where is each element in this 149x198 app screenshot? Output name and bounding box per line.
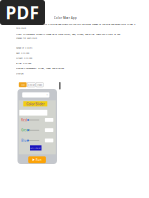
staticText: Green: 0 to 255	[16, 56, 32, 60]
staticText: Run	[36, 158, 42, 162]
staticText: Note: In computer screen is made up of t…	[16, 32, 120, 36]
button[interactable]: Design	[27, 82, 35, 87]
staticText: Design Components: Slider, Label and But…	[16, 66, 64, 70]
staticText: Color Mixer App	[54, 16, 77, 20]
staticText: nice color.	[16, 26, 27, 29]
staticText: Red	[21, 118, 27, 122]
staticText: ⌄	[46, 93, 48, 96]
staticText: Color Slider	[26, 101, 44, 106]
staticText: PDF	[5, 1, 39, 24]
button[interactable]: Run	[28, 156, 46, 163]
button[interactable]: Mix Colors	[30, 145, 41, 150]
staticText: shades for each color.	[16, 36, 38, 40]
staticText: Design	[28, 83, 35, 86]
button[interactable]: Index	[36, 82, 43, 87]
staticText: Green	[21, 128, 30, 132]
staticText: Red: 0 to 255	[16, 51, 29, 54]
staticText: Mix Colors	[30, 146, 41, 149]
staticText: Design:	[16, 72, 24, 75]
staticText: Blue	[21, 139, 28, 142]
staticText: Range of Colors:	[16, 46, 33, 49]
button[interactable]: Code	[19, 82, 26, 87]
staticText: Code	[21, 83, 25, 86]
staticText: Index	[37, 83, 42, 86]
staticText: Blue: 0 to 255	[16, 61, 31, 65]
staticText: It's a mixing app where we can mix diffe…	[44, 22, 135, 26]
